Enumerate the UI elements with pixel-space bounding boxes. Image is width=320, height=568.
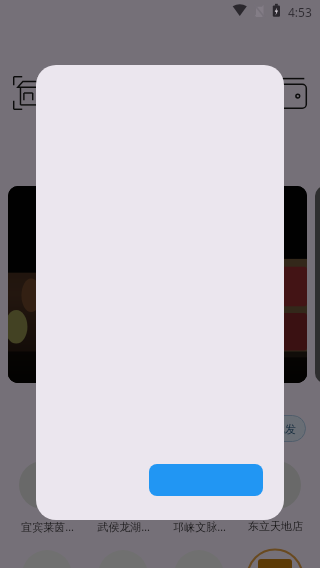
staticText: 东立天地店 — [248, 519, 303, 533]
button[interactable]: 宜宾莱茵… — [9, 517, 85, 535]
button[interactable]: Category 4 — [253, 461, 301, 509]
button[interactable]: 邛崃文脉… — [161, 517, 237, 535]
button[interactable] — [149, 464, 263, 496]
staticText: 武侯龙湖… — [97, 519, 150, 534]
button[interactable]: Scan store code — [13, 76, 47, 110]
button[interactable]: 武侯龙湖… — [85, 517, 161, 535]
button[interactable]: Category 3 — [175, 461, 223, 509]
staticText: 宜宾莱茵… — [21, 519, 74, 534]
staticText: 4:53 — [288, 4, 312, 20]
staticText: 邛崃文脉… — [173, 519, 226, 534]
button[interactable]: Wallet — [277, 76, 307, 110]
staticText: 批发 — [274, 422, 296, 436]
button[interactable]: Category 1 — [19, 461, 67, 509]
button[interactable]: 批发 — [264, 415, 306, 442]
button[interactable]: 东立天地店 — [237, 517, 313, 535]
